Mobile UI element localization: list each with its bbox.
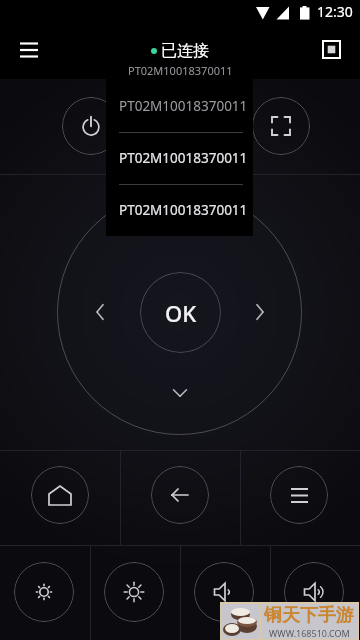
button[interactable]: Volume up	[284, 562, 344, 622]
button[interactable]: Home	[31, 466, 89, 524]
button[interactable]: Fullscreen	[252, 97, 310, 155]
button[interactable]: PT02M10018370011	[106, 183, 253, 235]
staticText: 铜天下手游	[264, 604, 354, 627]
staticText: PT02M10018370011	[119, 97, 248, 115]
button[interactable]: Up	[164, 215, 196, 247]
button[interactable]: Stop casting	[307, 25, 355, 73]
button[interactable]: Brightness up	[104, 562, 164, 622]
staticText: PT02M10018370011	[119, 149, 248, 167]
staticText: 已连接	[161, 41, 209, 61]
button[interactable]: Menu	[270, 466, 328, 524]
staticText: PT02M10018370011	[128, 63, 233, 78]
button[interactable]: OK	[140, 272, 221, 353]
button[interactable]: PT02M10018370011	[106, 79, 253, 131]
button[interactable]: Back	[151, 466, 209, 524]
button[interactable]: Right	[244, 296, 276, 328]
button[interactable]: Volume down	[194, 562, 254, 622]
button[interactable]: PT02M10018370011	[106, 131, 253, 183]
staticText: 12:30	[317, 2, 353, 21]
button[interactable]: Navigation menu	[5, 26, 53, 74]
button[interactable]: Left	[84, 296, 116, 328]
button[interactable]: Brightness down	[14, 562, 74, 622]
button[interactable]: Down	[164, 377, 196, 409]
staticText: PT02M10018370011	[119, 201, 248, 219]
staticText: OK	[165, 298, 197, 328]
staticText: WWW.168510.COM	[269, 627, 350, 639]
button[interactable]: Power	[62, 97, 120, 155]
